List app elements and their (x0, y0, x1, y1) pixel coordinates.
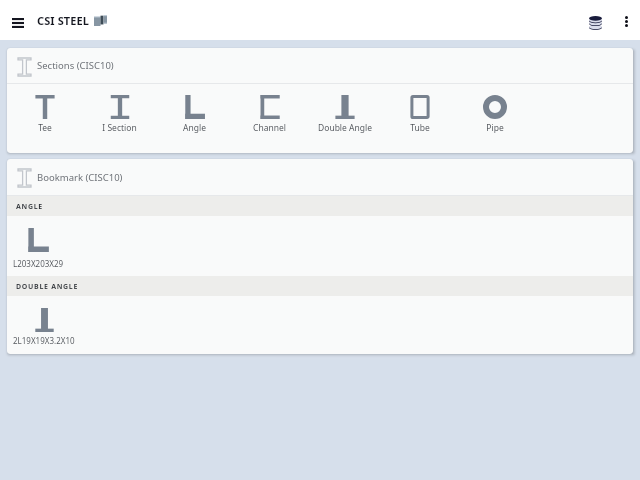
staticText: Tee (38, 122, 52, 134)
staticText: L203X203X29 (13, 258, 64, 269)
staticText: Tube (410, 122, 430, 134)
button[interactable]: Tee (7, 84, 82, 153)
button[interactable]: I Section (82, 84, 157, 153)
button[interactable]: Database (578, 5, 613, 40)
staticText: ANGLE (16, 202, 43, 212)
staticText: 2L19X19X3.2X10 (13, 335, 75, 346)
button[interactable]: More options (610, 5, 640, 37)
button[interactable]: Channel (232, 84, 307, 153)
button[interactable]: 2L19X19X3.2X10 (7, 296, 633, 354)
staticText: Angle (183, 122, 206, 134)
button[interactable]: CSI STEEL (37, 13, 107, 28)
staticText: DOUBLE ANGLE (16, 282, 79, 292)
staticText: Channel (253, 122, 286, 134)
staticText: CSI STEEL (37, 13, 90, 28)
button[interactable]: Pipe (457, 84, 532, 153)
staticText: Bookmark (CISC10) (37, 171, 123, 184)
button[interactable]: Navigation menu (4, 10, 32, 35)
staticText: Pipe (486, 122, 504, 134)
button[interactable]: Angle (157, 84, 232, 153)
staticText: I Section (102, 122, 137, 134)
button[interactable]: Double Angle (307, 84, 382, 153)
staticText: Double Angle (318, 122, 372, 134)
staticText: Sections (CISC10) (37, 59, 114, 72)
button[interactable]: Tube (382, 84, 457, 153)
button[interactable]: L203X203X29 (7, 216, 633, 276)
